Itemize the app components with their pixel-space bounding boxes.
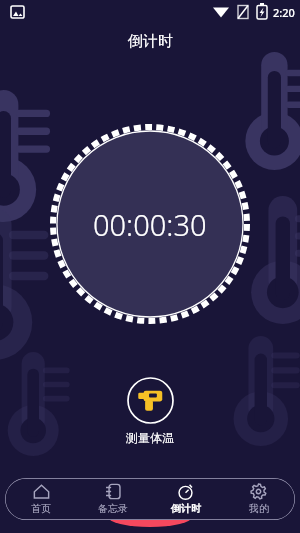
button[interactable]: 测量体温: [126, 430, 174, 445]
staticText: 备忘录: [98, 502, 128, 515]
button[interactable]: 备忘录: [77, 478, 149, 520]
button[interactable]: 我的: [222, 478, 295, 520]
staticText: 倒计时: [171, 502, 201, 515]
staticText: 我的: [249, 502, 269, 515]
button[interactable]: 首页: [5, 478, 77, 520]
staticText: 00:00:30: [93, 205, 207, 244]
staticText: 首页: [31, 502, 51, 515]
staticText: 倒计时: [128, 32, 173, 51]
staticText: 2:20: [273, 5, 295, 20]
button[interactable]: 倒计时: [149, 478, 222, 520]
staticText: 测量体温: [126, 430, 174, 445]
button[interactable]: 测量体温: [127, 377, 174, 424]
